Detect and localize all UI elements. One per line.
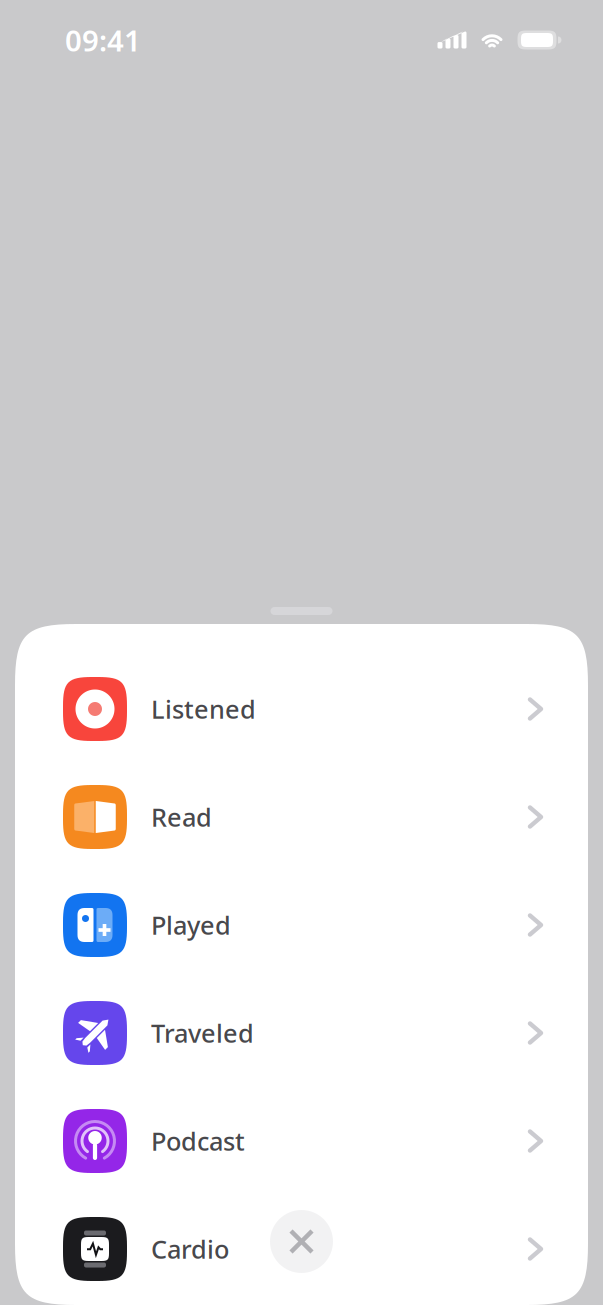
staticText: Traveled [151,1016,254,1050]
staticText: Played [151,908,231,942]
staticText: Listened [151,692,256,726]
staticText: Cardio [151,1232,229,1266]
button[interactable]: Played [15,871,588,979]
button[interactable]: Podcast [15,1087,588,1195]
staticText: Podcast [151,1124,245,1158]
button[interactable]: Close [270,1210,333,1273]
button[interactable]: Listened [15,655,588,763]
staticText: 09:41 [65,20,141,59]
staticText: Read [151,800,212,834]
button[interactable]: Cardio [15,1195,588,1303]
button[interactable]: Traveled [15,979,588,1087]
button[interactable]: Read [15,763,588,871]
